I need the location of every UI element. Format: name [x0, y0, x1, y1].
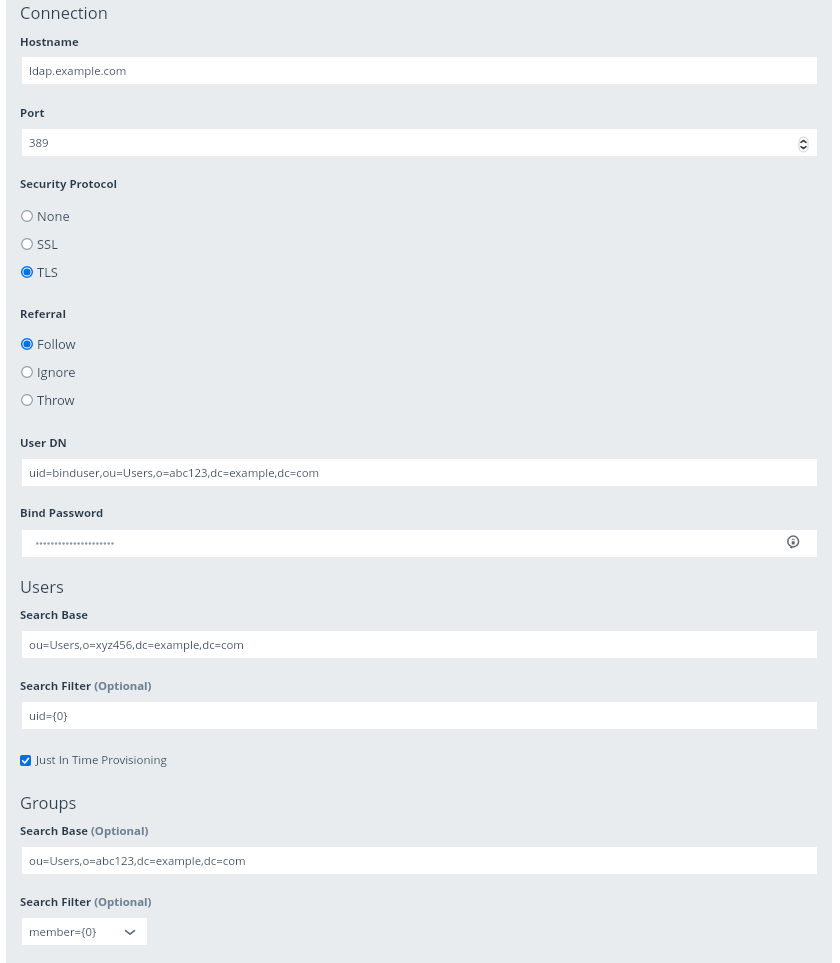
staticText: Port: [20, 105, 45, 121]
staticText: Throw: [37, 391, 75, 409]
staticText: uid={0}: [29, 708, 68, 724]
staticText: Security Protocol: [20, 176, 117, 192]
staticText: Referral: [20, 306, 66, 322]
staticText: Bind Password: [20, 505, 104, 521]
button[interactable]: uid=binduser,ou=Users,o=abc123,dc=exampl…: [22, 459, 817, 486]
button[interactable]: ldap.example.com: [22, 57, 817, 84]
staticText: Just In Time Provisioning: [36, 752, 167, 768]
button[interactable]: ou=Users,o=abc123,dc=example,dc=com: [22, 847, 817, 874]
staticText: Hostname: [20, 34, 79, 50]
button[interactable]: member={0}: [22, 918, 147, 945]
staticText: Search Filter (Optional): [20, 678, 152, 694]
staticText: Ignore: [37, 363, 76, 381]
button[interactable]: None: [20, 206, 70, 226]
button[interactable]: SSL: [20, 234, 58, 254]
staticText: Search Base: [20, 607, 89, 623]
staticText: Search Base (Optional): [20, 823, 149, 839]
button[interactable]: Follow: [20, 334, 76, 354]
staticText: Search Filter (Optional): [20, 894, 152, 910]
staticText: ou=Users,o=abc123,dc=example,dc=com: [29, 853, 246, 869]
staticText: TLS: [37, 263, 58, 281]
button[interactable]: Reset password: [787, 535, 800, 551]
staticText: ldap.example.com: [29, 63, 127, 79]
button[interactable]: Throw: [20, 390, 75, 410]
button[interactable]: TLS: [20, 262, 58, 282]
staticText: User DN: [20, 435, 67, 451]
staticText: uid=binduser,ou=Users,o=abc123,dc=exampl…: [29, 465, 320, 481]
button[interactable]: Reset password: [22, 530, 817, 557]
button[interactable]: Ignore: [20, 362, 76, 382]
staticText: member={0}: [29, 924, 97, 940]
button[interactable]: Increment or decrement port: [799, 137, 808, 152]
staticText: ou=Users,o=xyz456,dc=example,dc=com: [29, 637, 244, 653]
staticText: None: [37, 207, 70, 225]
button[interactable]: uid={0}: [22, 702, 817, 729]
button[interactable]: Groups: [20, 791, 77, 813]
button[interactable]: Open dropdown: [123, 925, 137, 939]
button[interactable]: 389: [22, 129, 817, 156]
staticText: 389: [29, 135, 49, 151]
button[interactable]: Users: [20, 575, 64, 597]
staticText: Follow: [37, 335, 76, 353]
button[interactable]: Connection: [20, 1, 108, 23]
button[interactable]: Just In Time Provisioning: [20, 750, 167, 770]
staticText: SSL: [37, 235, 58, 253]
button[interactable]: ou=Users,o=xyz456,dc=example,dc=com: [22, 631, 817, 658]
